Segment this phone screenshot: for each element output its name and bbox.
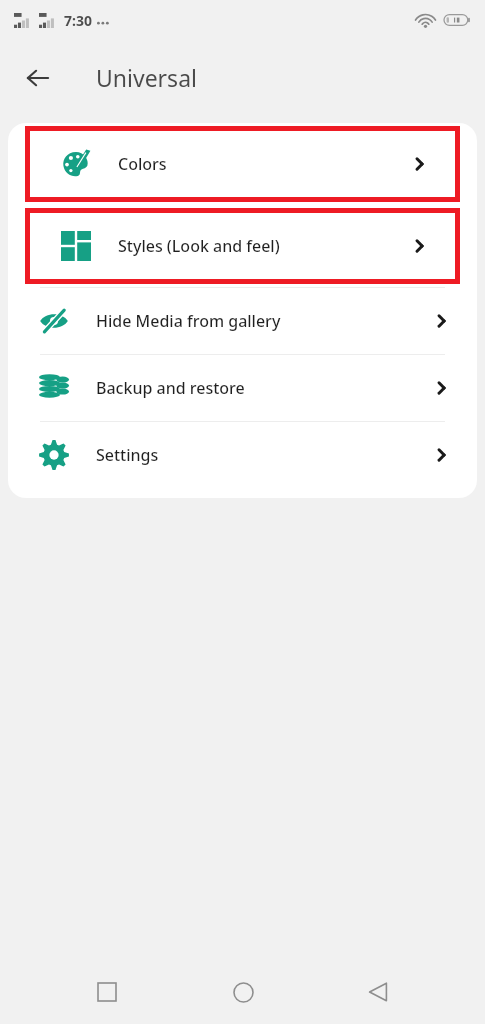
- staticText: Styles (Look and feel): [118, 235, 409, 257]
- button[interactable]: Styles (Look and feel): [30, 213, 455, 279]
- staticText: Colors: [118, 153, 409, 175]
- staticText: Settings: [96, 444, 431, 466]
- staticText: Hide Media from gallery: [96, 310, 431, 332]
- button[interactable]: Colors: [30, 131, 455, 197]
- button[interactable]: Recents: [79, 964, 135, 1020]
- staticText: 7:30: [64, 11, 92, 30]
- button[interactable]: Backup and restore: [8, 355, 477, 421]
- button[interactable]: Back: [16, 56, 60, 100]
- button[interactable]: Hide Media from gallery: [8, 288, 477, 354]
- staticText: Backup and restore: [96, 377, 431, 399]
- button[interactable]: Back: [350, 964, 406, 1020]
- button[interactable]: Settings: [8, 422, 477, 488]
- staticText: Universal: [96, 62, 197, 93]
- button[interactable]: Home: [215, 964, 271, 1020]
